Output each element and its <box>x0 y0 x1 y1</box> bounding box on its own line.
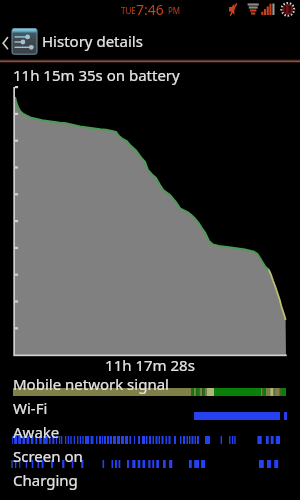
staticText: PM <box>168 5 181 16</box>
staticText: Awake <box>13 422 60 442</box>
staticText: Screen on <box>13 446 83 466</box>
staticText: Mobile network signal <box>13 374 169 394</box>
staticText: 11h 17m 28s <box>0 355 300 375</box>
staticText: 7:46 <box>136 0 164 19</box>
staticText: Wi-Fi <box>13 398 48 418</box>
staticText: 11h 15m 35s on battery <box>13 65 180 85</box>
staticText: TUE <box>121 5 136 16</box>
staticText: Charging <box>13 470 78 490</box>
button[interactable] <box>0 20 300 60</box>
staticText: History details <box>42 31 143 51</box>
